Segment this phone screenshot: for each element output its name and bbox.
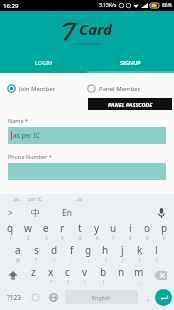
button[interactable]: Voice input: [148, 205, 174, 220]
staticText: 16:29: [3, 2, 19, 10]
staticText: r: [60, 221, 65, 235]
staticText: as: [77, 196, 83, 203]
staticText: PANEL PASSCODE: [108, 101, 153, 108]
staticText: ): [156, 257, 158, 263]
button[interactable]: z: [25, 264, 42, 286]
button[interactable]: x: [42, 264, 59, 286]
staticText: 9: [146, 235, 149, 241]
staticText: Phone Number *: [8, 153, 52, 160]
staticText: h: [102, 243, 109, 257]
staticText: (: [139, 257, 141, 263]
button[interactable]: i: [122, 220, 139, 242]
button[interactable]: Enter: [155, 289, 172, 306]
staticText: v: [82, 265, 88, 279]
staticText: as per IC: [13, 131, 40, 140]
button[interactable]: p: [156, 220, 173, 242]
button[interactable]: h: [97, 242, 114, 264]
staticText: >: [8, 207, 13, 218]
staticText: :: [71, 257, 73, 263]
staticText: l: [155, 243, 158, 257]
staticText: y: [94, 221, 100, 235]
staticText: j: [121, 243, 124, 257]
button[interactable]: s: [27, 242, 45, 264]
staticText: g: [85, 243, 92, 257]
button[interactable]: d: [45, 242, 63, 264]
button[interactable]: t: [71, 220, 88, 242]
staticText: +: [53, 257, 56, 263]
button[interactable]: as per IC: [8, 127, 166, 144]
button[interactable]: En: [50, 205, 84, 220]
staticText: -: [121, 279, 123, 285]
button[interactable]: Panel Member: [87, 82, 167, 95]
button[interactable]: n: [112, 264, 130, 286]
staticText: 7: [112, 235, 115, 241]
button[interactable]: e: [37, 220, 54, 242]
staticText: e: [43, 221, 49, 235]
button[interactable]: PANEL PASSCODE: [88, 98, 172, 110]
staticText: 中: [31, 207, 40, 218]
button[interactable]: l: [148, 242, 165, 264]
staticText: Card: [79, 19, 113, 39]
button[interactable]: b: [94, 264, 112, 286]
button[interactable]: LOGIN: [0, 53, 87, 71]
button[interactable]: r: [54, 220, 71, 242]
staticText: 8: [129, 235, 132, 241]
staticText: it's all about value: [73, 41, 102, 46]
staticText: x: [48, 265, 54, 279]
button[interactable]: a: [9, 242, 27, 264]
staticText: LOGIN: [35, 59, 53, 66]
staticText: ": [50, 279, 52, 285]
button[interactable]: w: [19, 220, 37, 242]
staticText: 86%: [162, 2, 172, 9]
button[interactable]: SIGNUP: [87, 53, 174, 71]
button[interactable]: English: [65, 290, 138, 304]
button[interactable]: m: [130, 264, 148, 286]
staticText: ?: [67, 279, 69, 285]
staticText: k: [137, 243, 143, 257]
staticText: d: [51, 243, 58, 257]
staticText: u: [110, 221, 117, 235]
staticText: b: [100, 265, 107, 279]
staticText: !: [84, 279, 86, 285]
button[interactable]: Keyboard settings: [0, 205, 20, 220]
staticText: 1: [9, 235, 12, 241]
button[interactable]: 中: [20, 205, 50, 220]
staticText: Panel Member: [99, 85, 141, 93]
button[interactable]: Join Member: [7, 82, 87, 95]
staticText: ;: [88, 257, 90, 263]
button[interactable]: v: [76, 264, 94, 286]
button[interactable]: Emoji: [26, 286, 44, 308]
button[interactable]: ?123: [2, 286, 26, 308]
staticText: per IC: [28, 196, 43, 203]
button[interactable]: u: [105, 220, 122, 242]
button[interactable]: g: [80, 242, 97, 264]
button[interactable]: f: [63, 242, 80, 264]
staticText: English: [92, 294, 111, 301]
staticText: ': [33, 279, 35, 285]
button[interactable]: o: [139, 220, 156, 242]
staticText: 0: [163, 235, 166, 241]
button[interactable]: Change language: [44, 286, 62, 308]
staticText: 3: [45, 235, 48, 241]
staticText: Name *: [8, 117, 28, 124]
button[interactable]: y: [88, 220, 105, 242]
staticText: f: [70, 243, 74, 257]
staticText: 2: [27, 235, 30, 241]
staticText: i: [129, 221, 132, 235]
button[interactable]: k: [131, 242, 148, 264]
button[interactable]: .: [141, 286, 155, 308]
staticText: ?123: [7, 293, 21, 302]
staticText: @: [16, 257, 21, 263]
staticText: a: [15, 243, 21, 257]
staticText: s: [34, 243, 39, 257]
button[interactable]: Backspace: [148, 264, 173, 286]
staticText: .: [147, 292, 150, 303]
staticText: 3.13K/s: [99, 2, 117, 9]
button[interactable]: j: [114, 242, 131, 264]
staticText: p: [161, 221, 168, 235]
button[interactable]: c: [59, 264, 76, 286]
button[interactable]: q: [1, 220, 19, 242]
button[interactable]: Shift: [1, 264, 25, 286]
staticText: as: [14, 196, 20, 203]
